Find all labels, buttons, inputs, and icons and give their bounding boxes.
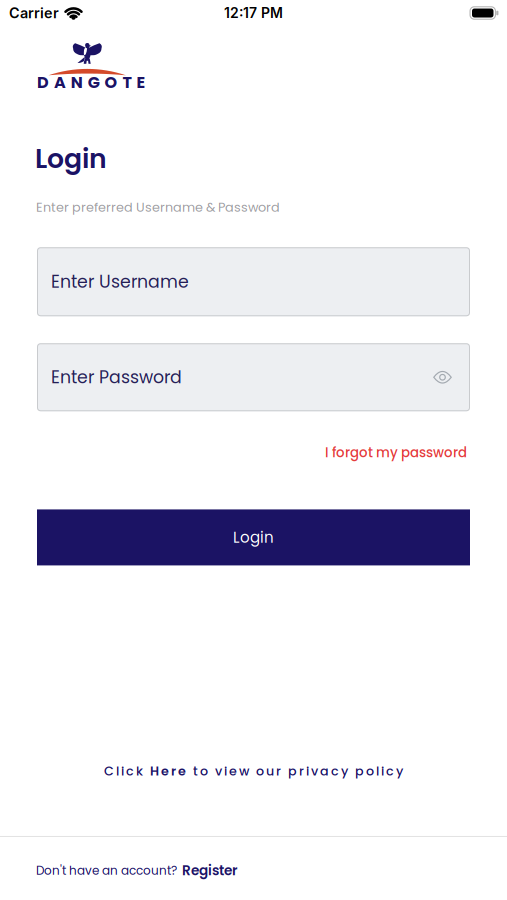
staticText: Register [182, 861, 237, 880]
button[interactable]: Don't have an account? [0, 861, 507, 880]
staticText: p [355, 762, 364, 780]
staticText: y [341, 762, 348, 780]
staticText: A [54, 71, 66, 94]
staticText: i [381, 762, 384, 780]
staticText: Don't have an account? [36, 862, 177, 879]
staticText: e [229, 762, 237, 780]
staticText: v [311, 762, 318, 780]
staticText: o [366, 762, 374, 780]
staticText: 12:17 PM [224, 4, 283, 21]
staticText: r [299, 762, 304, 780]
staticText: i [306, 762, 309, 780]
staticText: c [386, 762, 394, 780]
staticText: I forgot my password [325, 443, 467, 462]
staticText: T [122, 71, 131, 94]
staticText: p [288, 762, 297, 780]
staticText: w [239, 762, 249, 780]
staticText: c [331, 762, 339, 780]
staticText: l [116, 762, 119, 780]
button[interactable]: Login [37, 509, 470, 565]
staticText: Enter Username [51, 270, 189, 294]
staticText: e [161, 762, 169, 780]
staticText: c [126, 762, 134, 780]
staticText: r [276, 762, 281, 780]
staticText: N [71, 71, 83, 94]
staticText: e [178, 762, 186, 780]
staticText: Login [233, 527, 274, 548]
staticText: r [171, 762, 176, 780]
staticText: i [224, 762, 227, 780]
staticText: y [396, 762, 403, 780]
staticText: H [150, 762, 159, 780]
staticText: o [256, 762, 264, 780]
staticText: C [104, 762, 114, 780]
staticText: Enter Password [51, 365, 182, 389]
staticText: D [37, 71, 49, 94]
staticText: O [105, 71, 118, 94]
button[interactable]: Enter Username [37, 247, 470, 316]
staticText: k [136, 762, 143, 780]
staticText: a [320, 762, 329, 780]
button[interactable]: Enter Password [37, 343, 470, 411]
staticText: E [136, 71, 145, 94]
staticText: u [266, 762, 274, 780]
staticText: l [376, 762, 379, 780]
staticText: i [121, 762, 124, 780]
staticText: Enter preferred Username & Password [36, 198, 280, 216]
staticText: o [200, 762, 208, 780]
staticText: Carrier [9, 4, 59, 22]
staticText: Login [35, 140, 107, 177]
button[interactable]: I forgot my password [325, 443, 467, 462]
staticText: t [193, 762, 198, 780]
staticText: G [88, 71, 100, 94]
button[interactable]: C [104, 762, 403, 780]
staticText: v [215, 762, 222, 780]
